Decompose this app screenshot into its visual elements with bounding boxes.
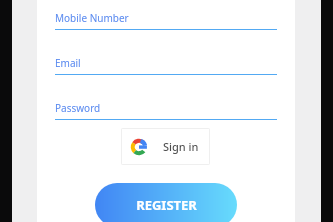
staticText: Password	[55, 101, 101, 115]
other: Sign in with Google	[130, 138, 148, 156]
button[interactable]: REGISTER	[95, 183, 237, 222]
staticText: Email	[55, 56, 81, 70]
staticText: Sign in	[163, 139, 199, 154]
staticText: Mobile Number	[55, 11, 129, 25]
button[interactable]: Sign in with Google	[121, 128, 210, 165]
button[interactable]: Password	[55, 101, 277, 120]
button[interactable]: Email	[55, 56, 277, 75]
staticText: REGISTER	[136, 196, 197, 214]
button[interactable]: Mobile Number	[55, 11, 277, 30]
